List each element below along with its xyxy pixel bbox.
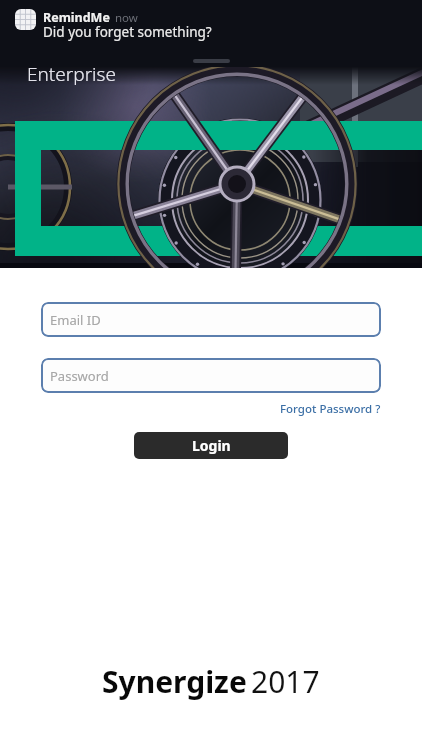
staticText: Enterprise [27,67,116,87]
staticText: Forgot Password ? [280,401,381,417]
button[interactable]: RemindMe [0,0,422,67]
staticText: Login [192,436,231,455]
button[interactable]: Login [134,432,288,459]
staticText: Email ID [50,311,101,329]
staticText: now [115,10,138,26]
button[interactable]: Email ID [41,302,381,337]
staticText: Password [50,367,109,385]
button[interactable]: Password [41,358,381,393]
staticText: RemindMe [43,9,110,26]
staticText: 2017 [251,661,320,702]
staticText: Synergize [102,661,247,702]
staticText: Did you forget something? [43,23,212,41]
button[interactable]: Forgot Password ? [278,399,383,419]
